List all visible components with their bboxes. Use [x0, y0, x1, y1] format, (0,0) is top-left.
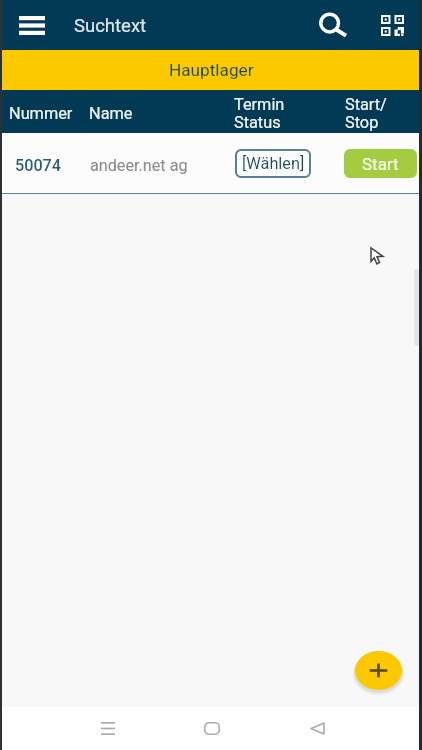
staticText: Termin Status: [234, 95, 285, 132]
button[interactable]: Add: [350, 646, 407, 696]
button[interactable]: Back: [300, 712, 334, 744]
staticText: Nummer: [9, 104, 73, 123]
staticText: Start: [362, 154, 399, 174]
staticText: Name: [89, 104, 133, 123]
staticText: Suchtext: [74, 15, 147, 37]
button[interactable]: Scan QR code: [370, 4, 414, 46]
button[interactable]: Recents: [91, 712, 125, 744]
staticText: 50074: [15, 156, 62, 175]
button[interactable]: Menu: [13, 5, 51, 45]
button[interactable]: Home: [195, 712, 229, 744]
button[interactable]: [Wählen]: [235, 149, 311, 178]
staticText: [Wählen]: [242, 154, 305, 173]
staticText: Start/ Stop: [345, 95, 387, 132]
staticText: andeer.net ag: [90, 156, 188, 175]
button[interactable]: Start: [344, 149, 417, 178]
staticText: Hauptlager: [169, 60, 254, 80]
button[interactable]: Hauptlager: [0, 50, 422, 90]
button[interactable]: Search: [312, 4, 356, 46]
button[interactable]: [0, 133, 422, 193]
